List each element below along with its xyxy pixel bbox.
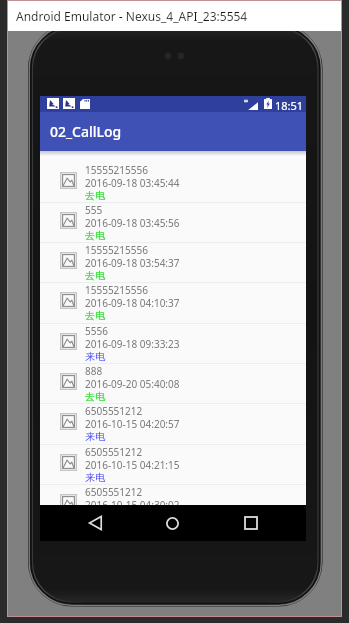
staticText: 2016-10-15 04:21:15 (85, 458, 180, 472)
staticText: 2016-09-20 05:40:08 (85, 377, 180, 391)
button[interactable]: 15555215556 (40, 283, 306, 322)
button[interactable]: 5556 (40, 324, 306, 363)
staticText: 来电 (85, 350, 105, 363)
staticText: 15555215556 (85, 283, 148, 297)
staticText: 来电 (85, 430, 105, 443)
staticText: 去电 (85, 189, 105, 202)
button[interactable]: Back (81, 509, 109, 537)
button[interactable]: 6505551212 (40, 404, 306, 443)
button[interactable]: 15555215556 (40, 163, 306, 202)
staticText: 2016-09-18 03:54:37 (85, 256, 180, 270)
staticText: 2016-09-18 04:10:37 (85, 296, 180, 310)
button[interactable]: 6505551212 (40, 445, 306, 484)
staticText: 2016-09-18 09:33:23 (85, 337, 180, 351)
staticText: 来电 (85, 471, 105, 484)
staticText: 2016-09-18 03:45:44 (85, 176, 180, 190)
staticText: 5556 (85, 324, 108, 338)
staticText: 15555215556 (85, 163, 148, 177)
staticText: 去电 (85, 309, 105, 322)
button[interactable]: 888 (40, 364, 306, 403)
staticText: 6505551212 (85, 485, 143, 499)
staticText: 6505551212 (85, 404, 143, 418)
button[interactable]: 6505551212 (40, 485, 306, 524)
staticText: 2016-10-15 04:20:57 (85, 417, 180, 431)
button[interactable]: 15555215556 (40, 243, 306, 282)
staticText: 来电 (85, 511, 105, 524)
staticText: 2016-09-18 03:45:56 (85, 216, 180, 230)
button[interactable]: Recents (237, 509, 265, 537)
staticText: 888 (85, 364, 103, 378)
staticText: 15555215556 (85, 243, 148, 257)
staticText: 2016-10-15 04:30:02 (85, 498, 180, 512)
staticText: 去电 (85, 229, 105, 242)
staticText: 去电 (85, 390, 105, 403)
staticText: 去电 (85, 269, 105, 282)
staticText: 18:51 (275, 98, 304, 113)
staticText: 02_CallLog (50, 122, 122, 141)
staticText: 6505551212 (85, 445, 143, 459)
button[interactable]: Home (158, 509, 186, 537)
staticText: 555 (85, 203, 103, 217)
button[interactable]: 555 (40, 203, 306, 242)
staticText: Android Emulator - Nexus_4_API_23:5554 (16, 8, 248, 24)
